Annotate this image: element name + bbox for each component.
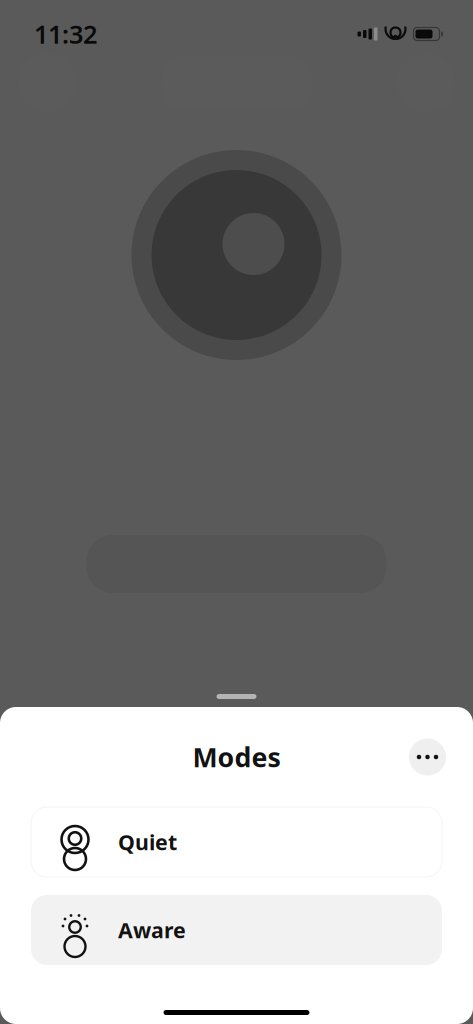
staticText: Quiet bbox=[118, 828, 177, 856]
button[interactable]: More options bbox=[409, 738, 446, 775]
button[interactable]: Quiet bbox=[31, 807, 442, 877]
staticText: Aware bbox=[118, 916, 186, 944]
staticText: 11:32 bbox=[34, 17, 97, 51]
staticText: Modes bbox=[192, 739, 280, 775]
button[interactable]: Aware bbox=[31, 895, 442, 965]
